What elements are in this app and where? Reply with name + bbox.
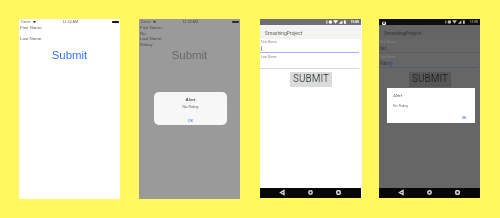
- staticText: Last Name:: [20, 36, 43, 41]
- staticText: SUBMIT: [293, 73, 329, 85]
- staticText: Carrier: [21, 20, 31, 24]
- staticText: First Name:: [20, 25, 43, 30]
- button[interactable]: Back: [399, 190, 404, 195]
- button[interactable]: OK: [459, 113, 473, 120]
- staticText: Nic Raboy: [393, 104, 409, 108]
- staticText: Carrier: [141, 20, 151, 24]
- staticText: Nic: [140, 31, 147, 36]
- staticText: SUBMIT: [412, 73, 448, 85]
- staticText: Last Name: [261, 55, 277, 59]
- staticText: Alert: [393, 93, 403, 98]
- button[interactable]: Recent apps: [336, 190, 341, 195]
- staticText: 11:55: [351, 20, 359, 24]
- staticText: First Name:: [140, 25, 163, 30]
- staticText: 11:52 AM: [140, 20, 241, 24]
- button[interactable]: Home: [427, 190, 432, 195]
- button[interactable]: Recent apps: [455, 190, 460, 195]
- button[interactable]: OK: [154, 115, 227, 125]
- staticText: 11:55: [470, 20, 478, 24]
- button[interactable]: Submit: [164, 47, 215, 62]
- staticText: SmashingProject: [265, 30, 303, 36]
- staticText: Submit: [44, 49, 95, 62]
- button[interactable]: SUBMIT: [290, 72, 332, 87]
- staticText: 11:52 AM: [20, 20, 121, 24]
- staticText: First Name: [380, 40, 396, 44]
- staticText: Submit: [164, 49, 215, 62]
- staticText: Raboy: [380, 61, 393, 66]
- staticText: First Name: [261, 40, 277, 44]
- staticText: SmashingProject: [384, 30, 422, 36]
- staticText: Alert: [154, 97, 227, 102]
- staticText: OK: [154, 118, 227, 122]
- staticText: Last Name:: [140, 36, 163, 41]
- button[interactable]: SUBMIT: [409, 72, 451, 87]
- staticText: Last Name: [380, 55, 396, 59]
- staticText: Nic Raboy: [154, 105, 227, 109]
- staticText: OK: [462, 116, 467, 120]
- staticText: Nic: [380, 46, 387, 51]
- button[interactable]: Submit: [44, 47, 95, 62]
- button[interactable]: Back: [280, 190, 285, 195]
- button[interactable]: Home: [308, 190, 313, 195]
- staticText: Raboy: [140, 42, 153, 47]
